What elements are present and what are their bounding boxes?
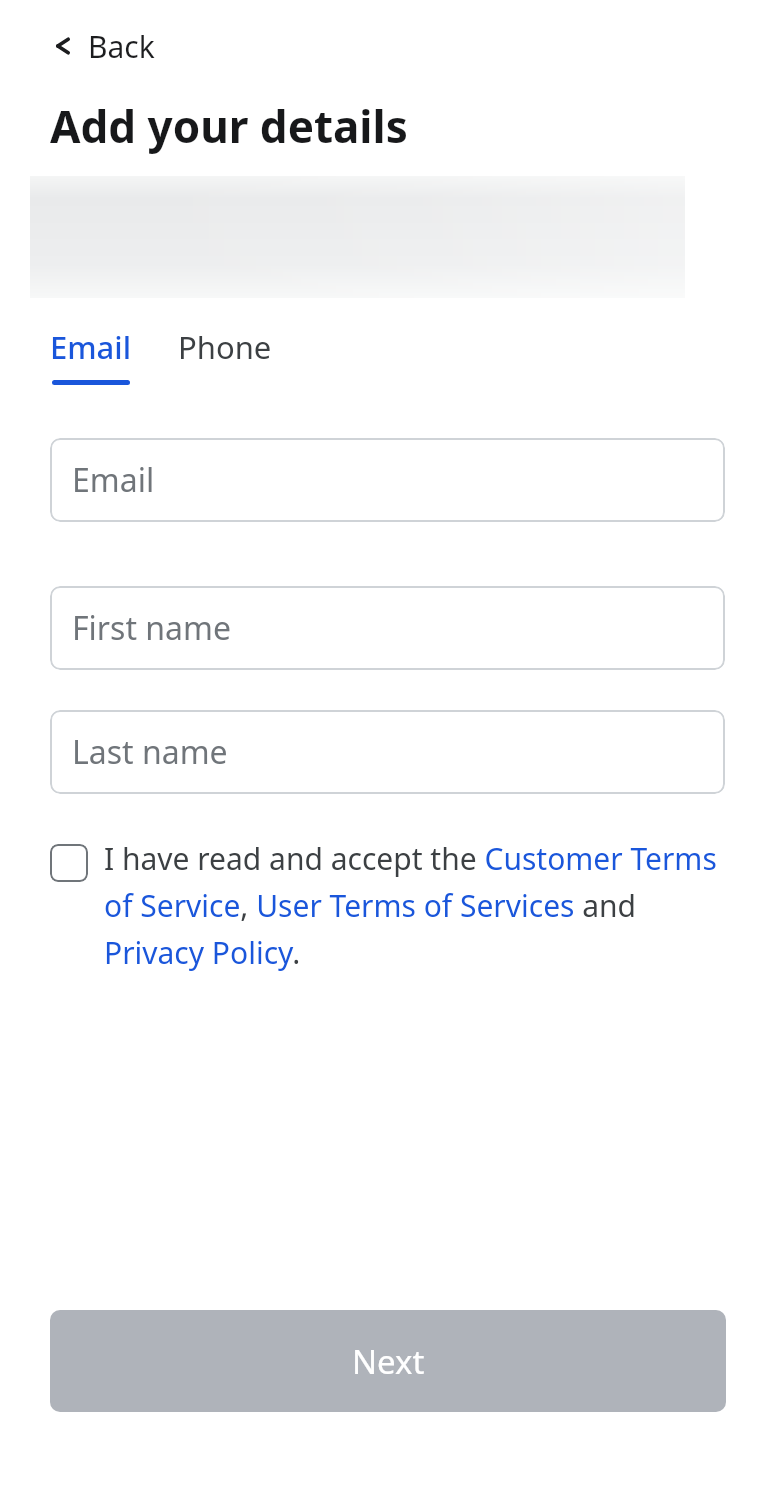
- staticText: Email: [50, 326, 132, 368]
- button[interactable]: Email: [50, 438, 725, 522]
- button[interactable]: Phone: [164, 326, 286, 368]
- staticText: First name: [72, 606, 231, 650]
- staticText: Add your details: [50, 96, 408, 156]
- staticText: Phone: [178, 326, 272, 368]
- button[interactable]: Accept terms checkbox: [50, 838, 730, 973]
- staticText: I have read and accept the Customer Term…: [104, 838, 730, 973]
- staticText: Back: [88, 26, 155, 67]
- staticText: Email: [72, 458, 155, 502]
- staticText: Last name: [72, 730, 228, 774]
- staticText: Next: [352, 1339, 425, 1384]
- button[interactable]: Last name: [50, 710, 725, 794]
- other: Accept terms checkbox: [50, 844, 88, 882]
- button[interactable]: First name: [50, 586, 725, 670]
- button[interactable]: Next: [50, 1310, 726, 1412]
- button[interactable]: Back: [50, 22, 167, 70]
- button[interactable]: Email: [50, 326, 132, 385]
